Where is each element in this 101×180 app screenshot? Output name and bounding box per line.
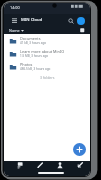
staticText: 486.5 kB, 3 hours ago bbox=[20, 67, 51, 71]
staticText: 3 folders bbox=[40, 75, 55, 80]
button[interactable] bbox=[80, 28, 85, 33]
staticText: 1.5 MB, 3 hours ago bbox=[20, 54, 49, 58]
staticText: Learn more about MinIO bbox=[20, 49, 65, 54]
staticText: 41 kB, 3 hours ago bbox=[20, 41, 47, 45]
button[interactable] bbox=[50, 161, 70, 169]
button[interactable]: Learn more about MinIO bbox=[4, 47, 90, 60]
button[interactable] bbox=[66, 16, 75, 25]
button[interactable] bbox=[73, 143, 86, 156]
button[interactable] bbox=[77, 17, 85, 25]
button[interactable] bbox=[70, 161, 90, 169]
button[interactable] bbox=[11, 161, 30, 169]
button[interactable] bbox=[30, 161, 50, 169]
staticText: Photos bbox=[20, 62, 33, 67]
button[interactable] bbox=[11, 17, 18, 24]
button[interactable]: Photos bbox=[4, 60, 90, 73]
button[interactable]: Documents bbox=[4, 34, 90, 47]
staticText: Name bbox=[9, 28, 20, 33]
button[interactable]: Name bbox=[9, 28, 24, 33]
staticText: 14:00 bbox=[10, 5, 20, 10]
staticText: Documents bbox=[20, 36, 41, 41]
staticText: MIN Cloud bbox=[21, 17, 43, 23]
